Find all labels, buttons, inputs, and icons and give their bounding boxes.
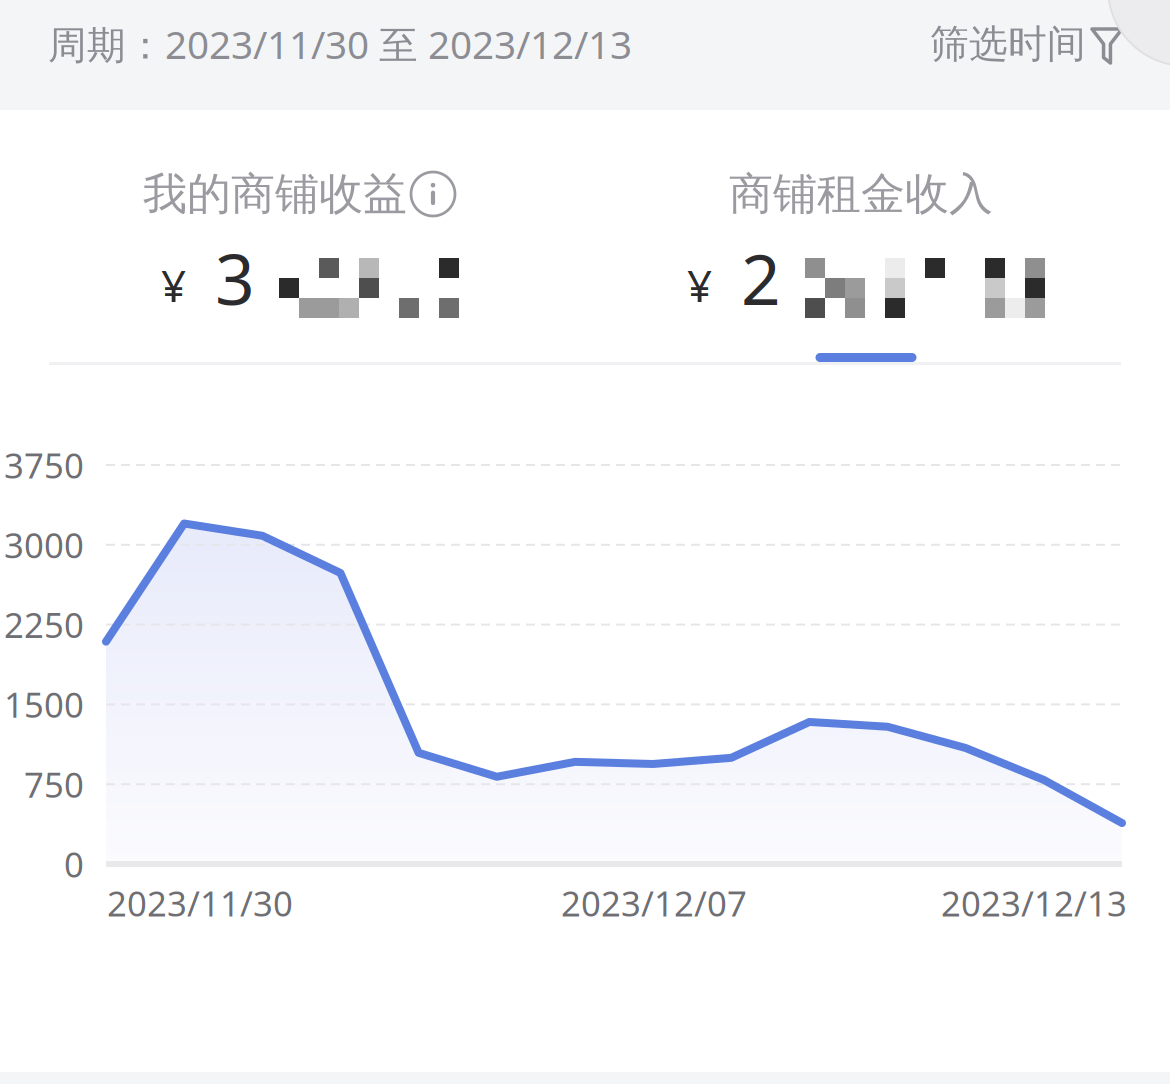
staticText: 2023/12/07 — [561, 880, 747, 926]
staticText: 3 — [215, 232, 255, 324]
staticText: 商铺租金收入 — [729, 167, 993, 221]
staticText: ¥ — [687, 256, 712, 314]
staticText: 1500 — [4, 681, 84, 727]
staticText: 我的商铺收益 — [143, 167, 407, 221]
staticText: 3750 — [4, 442, 84, 488]
staticText: 2023/12/13 — [941, 880, 1127, 926]
staticText: 0 — [64, 841, 84, 887]
staticText: 周期：2023/11/30 至 2023/12/13 — [48, 18, 632, 70]
button[interactable]: 商铺租金收入 — [583, 171, 1168, 362]
staticText: ¥ — [161, 256, 186, 314]
button[interactable]: 筛选时间 — [930, 31, 1170, 79]
staticText: 750 — [24, 761, 84, 807]
staticText: 筛选时间 — [930, 20, 1086, 68]
staticText: 2023/11/30 — [107, 880, 293, 926]
button[interactable]: 我的商铺收益 — [17, 171, 602, 362]
staticText: 2 — [741, 232, 781, 324]
staticText: 3000 — [4, 522, 84, 568]
staticText: 2250 — [4, 602, 84, 648]
